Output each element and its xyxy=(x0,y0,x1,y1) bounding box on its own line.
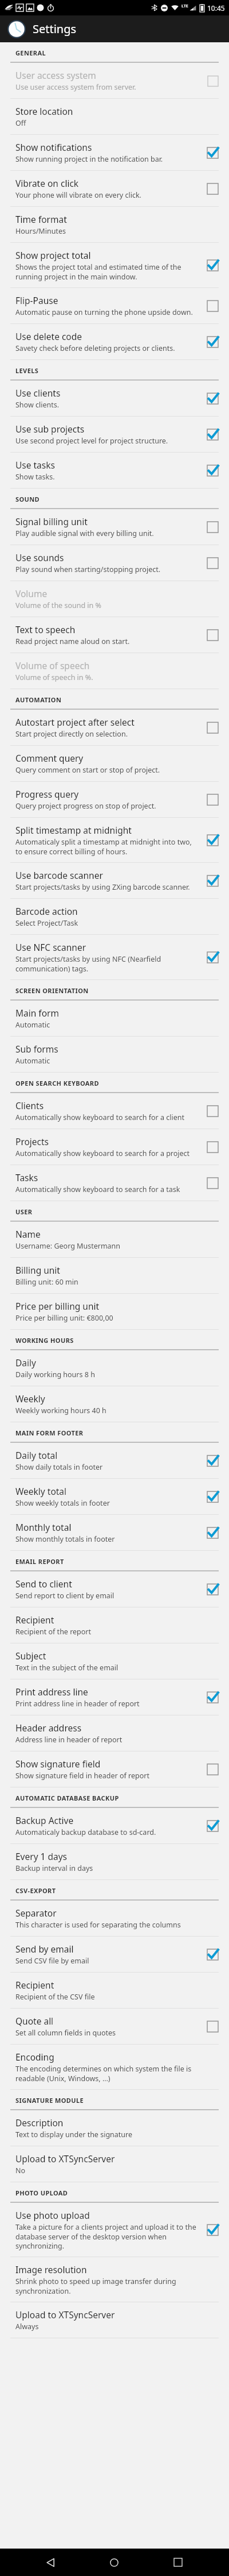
other: Use sub projects xyxy=(204,426,221,443)
button[interactable]: Use sounds xyxy=(0,545,229,581)
staticText: Comment query xyxy=(15,752,84,764)
button[interactable]: Header address xyxy=(0,1715,229,1751)
button[interactable]: Image resolution xyxy=(0,2257,229,2302)
button[interactable]: Home xyxy=(101,2549,127,2575)
button[interactable]: Text to speech xyxy=(0,617,229,653)
staticText: Read project name aloud on start. xyxy=(15,637,130,646)
button[interactable]: Upload to XTSyncServer xyxy=(0,2302,229,2338)
other: Flip-Pause xyxy=(204,298,221,314)
button[interactable]: Every 1 days xyxy=(0,1844,229,1880)
button[interactable]: Vibrate on click xyxy=(0,171,229,207)
button[interactable]: Send to client xyxy=(0,1571,229,1607)
staticText: 10:45 xyxy=(207,3,225,13)
staticText: The encoding determines on which system … xyxy=(15,2064,200,2083)
button[interactable]: Encoding xyxy=(0,2045,229,2090)
button[interactable]: Recipient xyxy=(0,1607,229,1643)
button[interactable]: Use barcode scanner xyxy=(0,863,229,899)
staticText: Weekly xyxy=(15,1393,45,1405)
button[interactable]: Show project total xyxy=(0,243,229,288)
button[interactable]: Separator xyxy=(0,1901,229,1937)
staticText: Recipient of the report xyxy=(15,1627,92,1637)
button[interactable]: Split timestamp at midnight xyxy=(0,818,229,863)
button[interactable]: Sub forms xyxy=(0,1037,229,1073)
button[interactable]: Time format xyxy=(0,207,229,243)
button: Volume xyxy=(0,581,229,617)
button[interactable]: Name xyxy=(0,1222,229,1258)
staticText: Send by email xyxy=(15,1943,74,1955)
staticText: Signal billing unit xyxy=(15,515,88,527)
button[interactable]: Weekly total xyxy=(0,1479,229,1515)
staticText: Show notifications xyxy=(15,141,92,153)
staticText: Start projects/tasks by using ZXing barc… xyxy=(15,882,190,892)
button[interactable]: Main form xyxy=(0,1001,229,1037)
button[interactable]: Print address line xyxy=(0,1679,229,1715)
staticText: Use second project level for project str… xyxy=(15,436,168,446)
other: Clients xyxy=(204,1103,221,1119)
staticText: Shows the project total and estimated ti… xyxy=(15,262,200,281)
button[interactable]: Subject xyxy=(0,1643,229,1679)
button[interactable]: Flip-Pause xyxy=(0,288,229,324)
other: Send by email xyxy=(204,1946,221,1963)
button[interactable]: Barcode action xyxy=(0,899,229,935)
staticText: LTE xyxy=(181,3,188,9)
staticText: Vibrate on click xyxy=(15,177,79,189)
staticText: Monthly total xyxy=(15,1521,72,1533)
staticText: Automatically show keyboard to search fo… xyxy=(15,1113,184,1122)
other: User access system xyxy=(204,73,221,89)
staticText: Show signature field in header of report xyxy=(15,1771,149,1781)
button[interactable]: Quote all xyxy=(0,2009,229,2045)
other: Monthly total xyxy=(204,1525,221,1541)
button[interactable]: Signal billing unit xyxy=(0,509,229,545)
staticText: Print address line in header of report xyxy=(15,1699,140,1709)
button[interactable]: Price per billing unit xyxy=(0,1294,229,1330)
button[interactable]: Comment query xyxy=(0,746,229,782)
button[interactable]: Description xyxy=(0,2110,229,2146)
staticText: Progress query xyxy=(15,788,79,800)
other: Projects xyxy=(204,1139,221,1155)
button[interactable]: Send by email xyxy=(0,1937,229,1973)
staticText: Show weekly totals in footer xyxy=(15,1498,110,1508)
button[interactable]: Use sub projects xyxy=(0,417,229,453)
button[interactable]: Daily total xyxy=(0,1443,229,1479)
staticText: SCREEN ORIENTATION xyxy=(15,986,89,995)
staticText: Upload to XTSyncServer xyxy=(15,2153,115,2165)
button[interactable]: Use NFC scanner xyxy=(0,935,229,980)
staticText: CSV-EXPORT xyxy=(15,1886,56,1895)
staticText: MAIN FORM FOOTER xyxy=(15,1429,84,1437)
staticText: Text in the subject of the email xyxy=(15,1663,119,1673)
staticText: Automaticaly backup database to sd-card. xyxy=(15,1827,156,1837)
staticText: Automatically show keyboard to search fo… xyxy=(15,1185,180,1194)
button[interactable]: Use tasks xyxy=(0,453,229,489)
other: Use tasks xyxy=(204,462,221,479)
button[interactable]: Projects xyxy=(0,1129,229,1165)
button[interactable]: Backup Active xyxy=(0,1808,229,1844)
button[interactable]: Use photo upload xyxy=(0,2203,229,2257)
button[interactable]: Use clients xyxy=(0,381,229,417)
other: Progress query xyxy=(204,791,221,808)
button[interactable]: Use delete code xyxy=(0,324,229,360)
button[interactable]: Weekly xyxy=(0,1386,229,1422)
button[interactable]: Clients xyxy=(0,1093,229,1129)
button[interactable]: Tasks xyxy=(0,1165,229,1201)
staticText: Subject xyxy=(15,1650,46,1662)
button[interactable]: Upload to XTSyncServer xyxy=(0,2146,229,2182)
button[interactable]: Back xyxy=(37,2549,64,2575)
button: Volume of speech xyxy=(0,653,229,689)
button[interactable]: Monthly total xyxy=(0,1515,229,1551)
staticText: SIGNATURE MODULE xyxy=(15,2096,84,2105)
button[interactable]: Show notifications xyxy=(0,135,229,171)
button[interactable]: Recipient xyxy=(0,1973,229,2009)
staticText: Automatic xyxy=(15,1020,50,1030)
staticText: Use sub projects xyxy=(15,423,85,435)
button[interactable]: Progress query xyxy=(0,782,229,818)
button[interactable]: Show signature field xyxy=(0,1751,229,1787)
button[interactable]: Billing unit xyxy=(0,1258,229,1294)
button[interactable]: Autostart project after select xyxy=(0,710,229,746)
staticText: Automatic pause on turning the phone ups… xyxy=(15,307,193,317)
button[interactable]: Daily xyxy=(0,1350,229,1386)
staticText: Use photo upload xyxy=(15,2209,90,2221)
staticText: Weekly working hours 40 h xyxy=(15,1406,106,1415)
button[interactable]: Store location xyxy=(0,99,229,135)
button[interactable]: Recent apps xyxy=(165,2549,191,2575)
other: Use NFC scanner xyxy=(204,949,221,966)
